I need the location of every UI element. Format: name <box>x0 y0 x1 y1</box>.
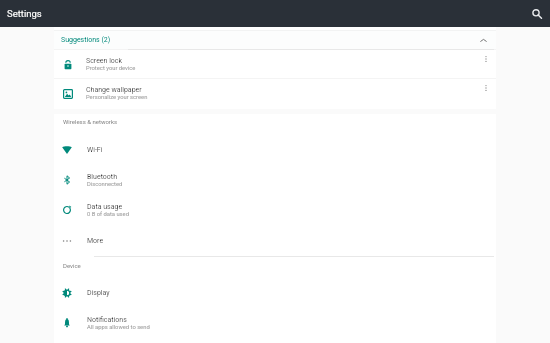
staticText: Notifications <box>87 316 127 324</box>
staticText: Screen lock <box>86 57 123 65</box>
button[interactable]: Wi-Fi <box>54 135 496 165</box>
staticText: Wi-Fi <box>87 146 103 154</box>
button[interactable]: More <box>54 226 496 256</box>
staticText: Settings <box>7 8 42 19</box>
button[interactable]: Data usage <box>54 195 496 225</box>
button[interactable]: Display <box>54 278 496 308</box>
button[interactable]: Bluetooth <box>54 165 496 195</box>
staticText: Disconnected <box>87 181 123 188</box>
button[interactable]: Suggestions (2) <box>54 31 496 49</box>
staticText: Wireless & networks <box>63 118 118 125</box>
button[interactable]: More options <box>480 82 492 94</box>
button[interactable]: More options <box>480 53 492 65</box>
staticText: Protect your device <box>86 65 136 72</box>
staticText: Personalize your screen <box>86 94 148 101</box>
staticText: Device <box>63 262 81 269</box>
button[interactable]: Collapse suggestions <box>475 32 491 48</box>
staticText: Change wallpaper <box>86 86 142 94</box>
button[interactable]: Search <box>526 3 548 25</box>
button[interactable]: Notifications <box>54 308 496 338</box>
button[interactable]: Screen lock <box>54 50 496 79</box>
staticText: Display <box>87 289 110 297</box>
staticText: Suggestions (2) <box>61 36 111 44</box>
staticText: All apps allowed to send <box>87 324 150 331</box>
button[interactable]: Change wallpaper <box>54 79 496 108</box>
staticText: Data usage <box>87 203 123 211</box>
staticText: More <box>87 237 104 245</box>
staticText: 0 B of data used <box>87 211 129 218</box>
staticText: Bluetooth <box>87 173 117 181</box>
